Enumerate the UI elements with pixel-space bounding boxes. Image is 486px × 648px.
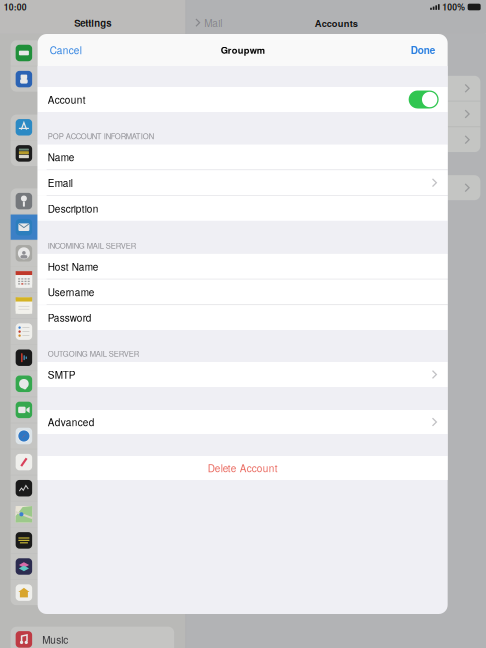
- staticText: Email: [48, 175, 73, 190]
- staticText: Done: [411, 43, 436, 57]
- button[interactable]: Email: [38, 170, 448, 195]
- button[interactable]: Contacts: [11, 241, 174, 266]
- button[interactable]: Password: [38, 305, 448, 330]
- button[interactable]: Advanced: [38, 410, 448, 434]
- staticText: Description: [48, 201, 99, 215]
- button[interactable]: App Store: [11, 115, 174, 140]
- button[interactable]: Account: [38, 87, 448, 112]
- button[interactable]: Done: [411, 43, 436, 57]
- staticText: News: [42, 455, 66, 469]
- staticText: 10:00: [4, 1, 27, 13]
- staticText: Passwords: [42, 194, 91, 208]
- button[interactable]: Delete Account: [38, 456, 448, 480]
- staticText: Password: [48, 310, 92, 325]
- staticText: Name: [48, 150, 75, 164]
- staticText: 100%: [442, 1, 465, 13]
- button[interactable]: Host Name: [38, 254, 448, 279]
- button[interactable]: Stocks: [11, 475, 174, 501]
- staticText: POP ACCOUNT INFORMATION: [48, 131, 154, 141]
- staticText: Accounts: [315, 16, 358, 30]
- staticText: Mail: [204, 15, 222, 30]
- staticText: Settings: [74, 16, 111, 30]
- staticText: Reminders: [42, 324, 91, 339]
- staticText: Contacts: [42, 246, 83, 260]
- button[interactable]: Mail: [195, 15, 222, 30]
- button[interactable]: Music: [11, 627, 174, 648]
- button[interactable]: Mail: [11, 214, 174, 240]
- button[interactable]: Reminders: [11, 319, 174, 344]
- staticText: Battery: [42, 46, 76, 60]
- button[interactable]: Notes: [11, 293, 174, 318]
- staticText: INCOMING MAIL SERVER: [48, 240, 136, 251]
- button[interactable]: SMTP: [38, 362, 448, 387]
- button[interactable]: Name: [38, 144, 448, 169]
- button[interactable]: Maps: [11, 502, 174, 527]
- staticText: Groupwm: [221, 43, 265, 57]
- staticText: Music: [42, 632, 68, 646]
- staticText: Account: [48, 92, 86, 107]
- staticText: Voice Memos: [42, 350, 103, 365]
- staticText: Wallet: [42, 146, 69, 160]
- staticText: Notes: [42, 298, 68, 313]
- button[interactable]: Messages: [11, 371, 174, 396]
- staticText: Safari: [42, 429, 69, 443]
- staticText: Delete Account: [208, 461, 278, 475]
- staticText: SMTP: [48, 367, 76, 382]
- staticText: OUTGOING MAIL SERVER: [48, 348, 139, 359]
- staticText: Messages: [42, 377, 89, 391]
- button[interactable]: Passwords: [11, 188, 174, 214]
- button[interactable]: Battery: [11, 40, 174, 66]
- button[interactable]: Username: [38, 279, 448, 304]
- staticText: Username: [48, 285, 95, 299]
- button[interactable]: News: [11, 449, 174, 475]
- button[interactable]: FaceTime: [11, 397, 174, 423]
- staticText: Cancel: [50, 43, 82, 57]
- button[interactable]: Files: [11, 554, 174, 579]
- staticText: FaceTime: [42, 403, 87, 417]
- button[interactable]: Description: [38, 196, 448, 221]
- button[interactable]: Privacy: [11, 66, 174, 92]
- staticText: Host Name: [48, 259, 99, 273]
- button[interactable]: Safari: [11, 423, 174, 449]
- staticText: Calendar: [42, 272, 84, 286]
- button[interactable]: Cancel: [50, 43, 82, 57]
- button[interactable]: Home: [11, 580, 174, 605]
- button[interactable]: Calendar: [11, 267, 174, 292]
- button[interactable]: Wallet: [11, 141, 174, 166]
- staticText: App Store: [42, 120, 89, 134]
- button[interactable]: Voice Memos: [11, 345, 174, 370]
- button[interactable]: Shortcuts: [11, 528, 174, 553]
- staticText: Mail: [42, 220, 60, 234]
- staticText: Advanced: [48, 415, 95, 429]
